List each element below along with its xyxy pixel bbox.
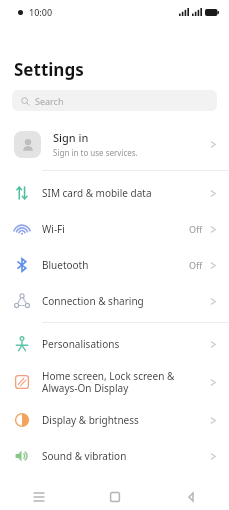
button[interactable]: Search <box>12 90 217 111</box>
button[interactable]: Display & brightness <box>0 402 229 438</box>
staticText: Bluetooth <box>42 258 189 272</box>
button[interactable]: Recent apps <box>0 484 77 510</box>
button[interactable]: Sign in <box>0 122 229 166</box>
button[interactable]: Wi-Fi <box>0 211 229 247</box>
staticText: Connection & sharing <box>42 294 210 308</box>
staticText: Sign in to use services. <box>53 147 138 158</box>
button[interactable]: Home <box>77 484 153 510</box>
button[interactable]: Back <box>153 484 229 510</box>
staticText: 10:00 <box>29 6 53 18</box>
button[interactable]: Personalisations <box>0 326 229 362</box>
staticText: Wi-Fi <box>42 222 189 236</box>
button[interactable]: SIM card & mobile data <box>0 175 229 211</box>
button[interactable]: Home screen, Lock screen & Always-On Dis… <box>0 362 229 402</box>
staticText: Display & brightness <box>42 413 210 427</box>
button[interactable]: Connection & sharing <box>0 283 229 319</box>
staticText: Home screen, Lock screen & Always-On Dis… <box>42 369 210 395</box>
staticText: Off <box>189 223 203 235</box>
button[interactable]: Bluetooth <box>0 247 229 283</box>
staticText: Sound & vibration <box>42 449 210 463</box>
staticText: Personalisations <box>42 337 210 351</box>
staticText: Settings <box>14 58 84 81</box>
staticText: Off <box>189 259 203 271</box>
staticText: Search <box>35 95 64 107</box>
staticText: SIM card & mobile data <box>42 186 210 200</box>
button[interactable]: Sound & vibration <box>0 438 229 474</box>
staticText: Sign in <box>53 130 89 145</box>
